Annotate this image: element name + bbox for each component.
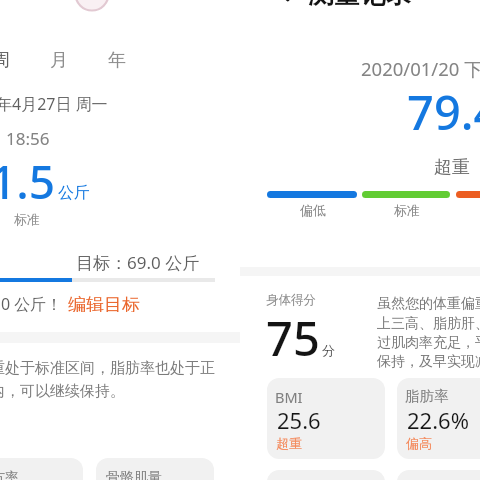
button[interactable]	[0, 458, 83, 480]
staticText: 虽然您的体重偏重	[377, 295, 480, 313]
button[interactable]: 月	[46, 48, 72, 72]
staticText: 骨骼肌量	[106, 469, 162, 480]
button[interactable]: Back	[266, 0, 298, 6]
staticText: 测量记录	[308, 0, 412, 11]
staticText: 年	[108, 49, 126, 72]
staticText: 月	[50, 49, 68, 72]
staticText: 偏低	[300, 202, 326, 218]
staticText: 分	[322, 342, 335, 358]
staticText: 目标：69.0 公斤	[76, 251, 200, 274]
staticText: 偏高	[406, 435, 432, 451]
staticText: 超重	[276, 435, 302, 451]
staticText: 方率	[0, 469, 19, 480]
staticText: 0 公斤！	[1, 293, 63, 315]
staticText: BMI	[275, 387, 303, 407]
staticText: 编辑目标	[68, 294, 140, 312]
button[interactable]: 脂肪率	[397, 378, 480, 459]
staticText: 重处于标准区间，脂肪率也处于正	[0, 359, 215, 378]
staticText: 超重	[434, 156, 470, 179]
staticText: 75	[266, 306, 320, 370]
staticText: 18:56	[6, 127, 50, 150]
staticText: 上三高、脂肪肝、	[377, 315, 480, 333]
staticText: 脂肪率	[405, 387, 449, 405]
button[interactable]: 编辑目标	[68, 294, 140, 312]
staticText: 25.6	[277, 405, 321, 435]
button[interactable]	[267, 470, 385, 480]
staticText: 周	[0, 49, 10, 72]
staticText: 公斤	[58, 183, 90, 203]
staticText: 身体得分	[266, 292, 316, 308]
staticText: 标准	[14, 211, 40, 227]
button[interactable]	[96, 458, 214, 480]
button[interactable]: BMI	[267, 378, 385, 459]
staticText: 2020/01/20 下	[361, 56, 480, 81]
staticText: 过肌肉率充足，平	[377, 334, 480, 352]
staticText: 1.5	[0, 150, 56, 213]
button[interactable]: 年	[104, 48, 130, 72]
staticText: 标准	[394, 202, 420, 218]
staticText: 内，可以继续保持。	[0, 382, 125, 401]
staticText: 年4月27日 周一	[0, 93, 108, 115]
button[interactable]: 周	[0, 48, 14, 72]
staticText: 79.4	[407, 80, 480, 144]
staticText: 保持，及早实现减	[377, 353, 480, 371]
staticText: 22.6%	[407, 405, 469, 435]
